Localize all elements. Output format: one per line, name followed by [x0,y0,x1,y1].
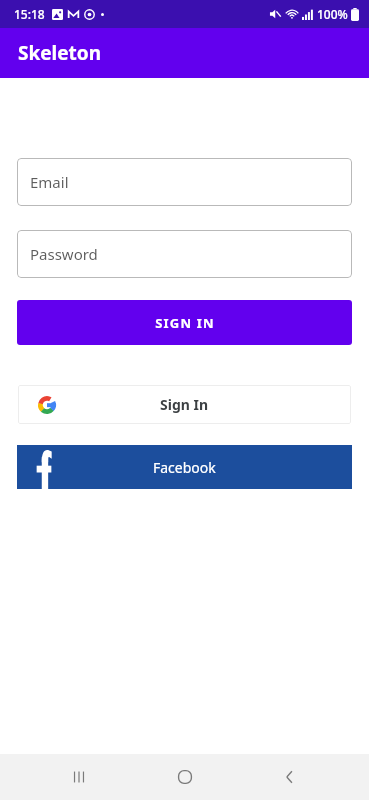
staticText: SIGN IN [155,314,215,332]
button[interactable]: Email [17,158,352,206]
staticText: Sign In [160,395,209,414]
staticText: Facebook [153,458,216,477]
staticText: Email [30,172,69,192]
button[interactable]: Sign In [18,385,351,424]
button[interactable]: Home [159,754,211,800]
button[interactable]: Back [264,754,316,800]
button[interactable]: SIGN IN [17,300,352,345]
staticText: 15:18 [14,6,45,22]
staticText: Skeleton [18,40,102,66]
button[interactable]: Recents [53,754,105,800]
staticText: 100% [317,6,348,22]
button[interactable]: Password [17,230,352,278]
staticText: Password [30,244,98,264]
button[interactable]: Facebook [17,445,352,489]
